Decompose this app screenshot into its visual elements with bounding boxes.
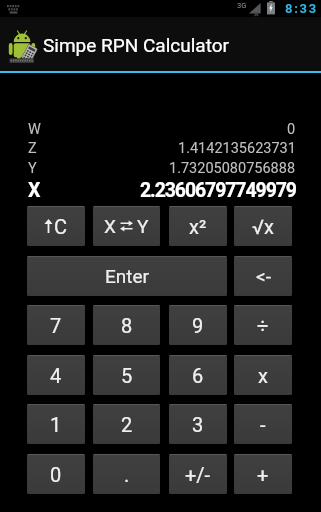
button[interactable]: 4 (27, 355, 85, 395)
staticText: 8 (121, 314, 133, 337)
staticText: 3 (192, 413, 204, 436)
staticText: Z (28, 140, 37, 157)
button[interactable]: 7 (27, 305, 85, 345)
staticText: x (258, 364, 268, 387)
button[interactable]: +/- (169, 454, 227, 494)
staticText: 3G (237, 1, 247, 10)
staticText: Enter (105, 265, 150, 287)
staticText: + (257, 463, 269, 486)
button[interactable]: . (93, 454, 160, 494)
button[interactable]: 1 (27, 404, 85, 444)
button[interactable]: 0 (27, 454, 85, 494)
button[interactable]: 6 (169, 355, 227, 395)
staticText: 4 (50, 364, 62, 387)
button[interactable]: √x (234, 206, 292, 246)
staticText: - (260, 413, 266, 436)
button[interactable]: - (234, 404, 292, 444)
staticText: 1.73205080756888 (169, 160, 296, 177)
button[interactable]: 5 (93, 355, 160, 395)
button[interactable]: x (234, 355, 292, 395)
staticText: 0 (287, 121, 296, 138)
button[interactable]: x² (169, 206, 227, 246)
staticText: 1 (50, 413, 62, 436)
staticText: 6 (192, 364, 204, 387)
staticText: x² (189, 215, 207, 238)
staticText: X (28, 179, 41, 202)
button[interactable]: 8 (93, 305, 160, 345)
staticText: +/- (185, 463, 211, 486)
staticText: <- (256, 265, 271, 287)
button[interactable]: 2 (93, 404, 160, 444)
staticText: W (28, 121, 41, 138)
staticText: 1.4142135623731 (178, 140, 296, 157)
button[interactable]: C (27, 206, 85, 246)
staticText: 2.23606797749979 (140, 179, 296, 202)
staticText: 0 (50, 463, 62, 486)
button[interactable]: 3 (169, 404, 227, 444)
button[interactable]: X (93, 206, 160, 246)
button[interactable]: ÷ (234, 305, 292, 345)
staticText: Y (28, 160, 37, 177)
button[interactable]: + (234, 454, 292, 494)
staticText: 2 (121, 413, 133, 436)
staticText: Simpe RPN Calculator (43, 34, 229, 56)
staticText: √x (252, 215, 274, 238)
staticText: 9 (192, 314, 204, 337)
staticText: Y (137, 215, 149, 237)
staticText: X (104, 215, 116, 237)
staticText: ÷ (257, 314, 269, 337)
staticText: 8:33 (285, 1, 318, 16)
staticText: . (124, 463, 130, 486)
button[interactable]: 9 (169, 305, 227, 345)
staticText: 5 (121, 364, 133, 387)
staticText: C (54, 215, 68, 238)
button[interactable]: <- (234, 256, 292, 296)
staticText: 7 (50, 314, 62, 337)
button[interactable]: Enter (27, 256, 227, 296)
